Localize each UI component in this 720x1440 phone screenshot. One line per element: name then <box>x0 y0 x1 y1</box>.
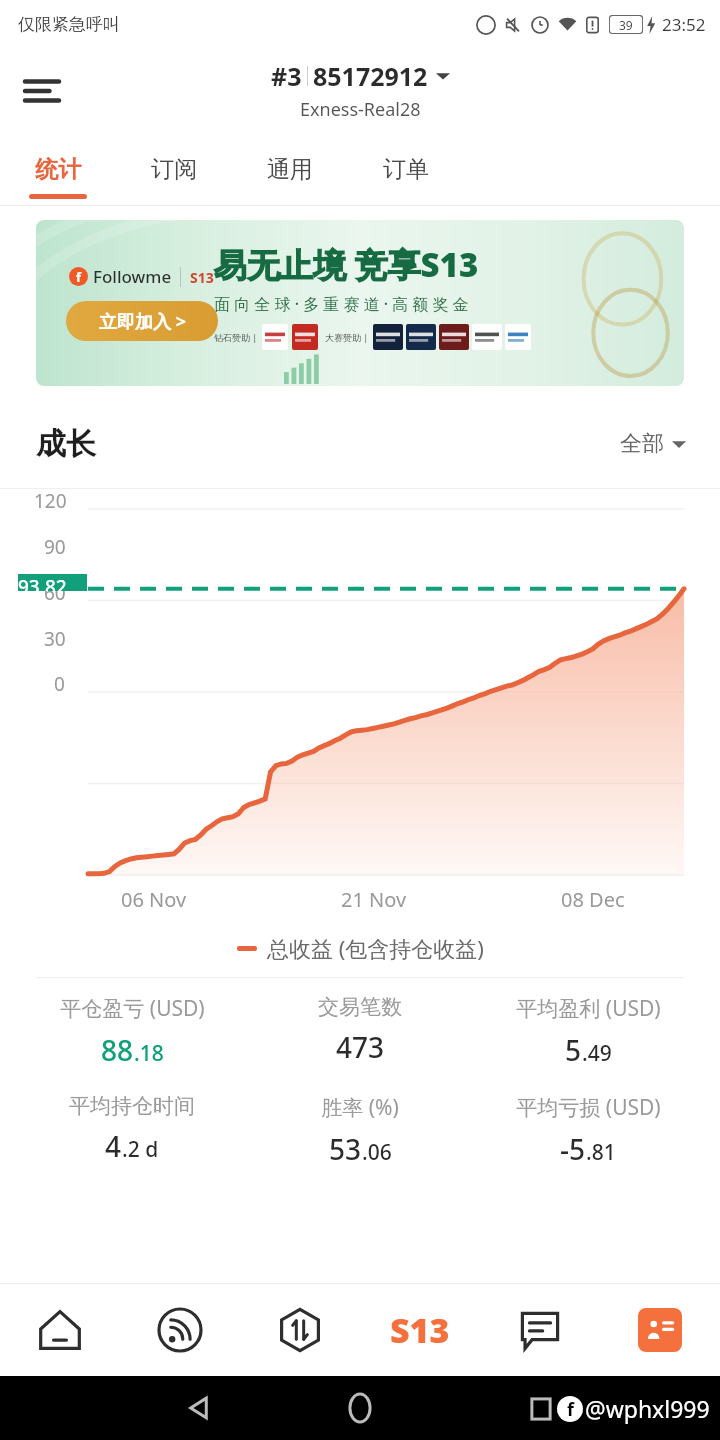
staticText: f <box>76 268 82 286</box>
staticText: 成长 <box>36 425 96 463</box>
staticText: 平均盈利 (USD) <box>516 994 661 1023</box>
staticText: 订阅 <box>151 155 197 184</box>
staticText: 30 <box>44 626 66 652</box>
button[interactable]: 统计 <box>0 133 116 205</box>
button[interactable]: f <box>36 220 684 386</box>
staticText: 钻石赞助 | <box>214 331 258 343</box>
staticText: 39 <box>619 17 633 33</box>
staticText: S13 <box>190 268 214 287</box>
staticText: 06 Nov <box>121 886 187 913</box>
button[interactable]: 全部 <box>620 430 686 458</box>
staticText: #3 <box>271 59 302 93</box>
staticText: 大赛赞助 | <box>325 331 369 343</box>
button[interactable]: Trade <box>240 1284 360 1376</box>
staticText: 90 <box>44 534 66 560</box>
button[interactable]: 立即加入 > <box>66 301 218 341</box>
button[interactable]: Profile <box>600 1284 720 1376</box>
staticText: 08 Dec <box>561 886 625 913</box>
staticText: 120 <box>34 488 67 514</box>
staticText: 面 向 全 球 · 多 重 赛 道 · 高 额 奖 金 <box>214 293 469 315</box>
staticText: S13 <box>390 1307 450 1353</box>
staticText: 23:52 <box>662 13 706 36</box>
staticText: @wphxl999 <box>585 1393 710 1424</box>
staticText: 平均持仓时间 <box>69 1093 195 1119</box>
staticText: -5 <box>560 1130 586 1168</box>
staticText: 53 <box>329 1130 362 1168</box>
staticText: 立即加入 > <box>99 309 186 334</box>
staticText: 60 <box>44 580 66 606</box>
button[interactable]: Home <box>0 1284 120 1376</box>
button[interactable]: Menu <box>14 63 70 119</box>
staticText: 0 <box>54 671 65 697</box>
staticText: .06 <box>362 1138 392 1167</box>
button[interactable]: 通用 <box>232 133 348 205</box>
staticText: 21 Nov <box>341 886 407 913</box>
staticText: .18 <box>134 1039 164 1068</box>
button[interactable]: Feed <box>120 1284 240 1376</box>
staticText: 全部 <box>620 430 664 458</box>
staticText: Exness-Real28 <box>300 97 421 122</box>
staticText: f <box>567 1397 574 1422</box>
button[interactable]: S13 <box>360 1284 480 1376</box>
staticText: 交易笔数 <box>318 994 402 1020</box>
staticText: 4 <box>105 1127 122 1165</box>
staticText: 平均亏损 (USD) <box>516 1093 661 1122</box>
staticText: 93.82 USD <box>18 574 87 591</box>
staticText: Followme <box>93 265 172 288</box>
staticText: 仅限紧急呼叫 <box>18 14 120 35</box>
staticText: 总收益 (包含持仓收益) <box>267 933 484 963</box>
staticText: 85172912 <box>313 59 428 93</box>
staticText: 易无止境 竞享S13 <box>214 242 479 287</box>
staticText: 胜率 (%) <box>321 1093 399 1122</box>
staticText: 5 <box>565 1031 582 1069</box>
staticText: .81 <box>586 1138 616 1167</box>
staticText: 通用 <box>267 155 313 184</box>
button[interactable]: 订阅 <box>116 133 232 205</box>
staticText: 平仓盈亏 (USD) <box>60 994 205 1023</box>
button[interactable]: Messages <box>480 1284 600 1376</box>
staticText: 473 <box>336 1028 385 1066</box>
staticText: .49 <box>582 1039 612 1068</box>
button[interactable]: 订单 <box>348 133 464 205</box>
staticText: 订单 <box>383 155 429 184</box>
staticText: 88 <box>101 1031 134 1069</box>
staticText: 统计 <box>35 155 81 184</box>
staticText: .2 d <box>122 1135 159 1164</box>
